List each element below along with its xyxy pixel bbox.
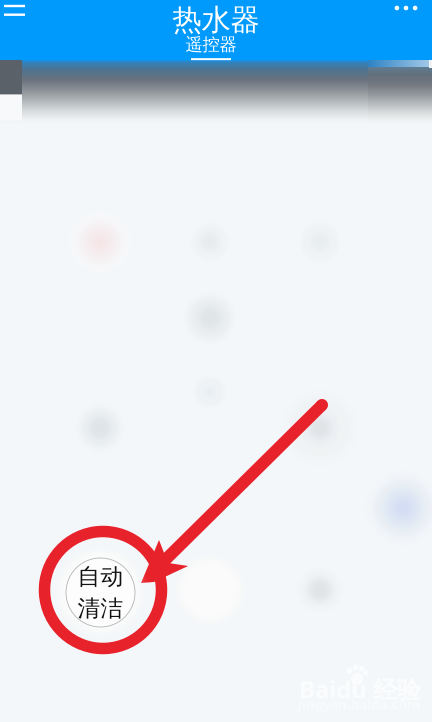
button[interactable]: Menu (0, 0, 42, 30)
staticText: 自动 (77, 563, 123, 590)
button[interactable]: 遥控器 (181, 34, 241, 60)
staticText: 遥控器 (185, 34, 236, 55)
button[interactable]: 自动 (66, 558, 135, 627)
button[interactable]: More (383, 0, 429, 22)
staticText: 热水器 (172, 2, 259, 38)
staticText: 清洁 (77, 594, 123, 622)
